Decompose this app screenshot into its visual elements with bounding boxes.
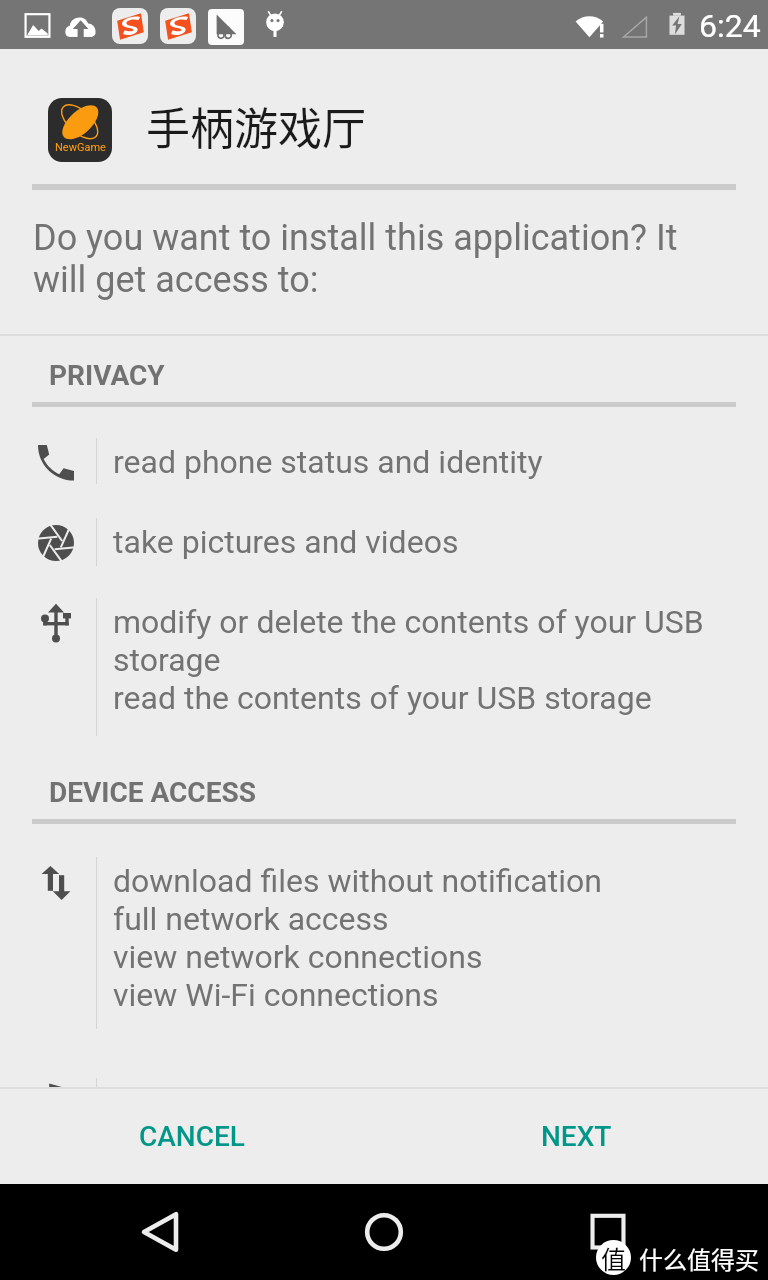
staticText: read phone status and identity: [113, 443, 543, 481]
staticText: Do you want to install this application?…: [33, 217, 713, 301]
staticText: DEVICE ACCESS: [49, 776, 256, 809]
staticText: storage: [113, 641, 221, 679]
staticText: 6:24: [699, 7, 761, 45]
button[interactable]: Back: [112, 1192, 208, 1272]
staticText: NewGame: [55, 141, 106, 154]
staticText: 值: [601, 1240, 627, 1275]
button[interactable]: CANCEL: [0, 1089, 384, 1184]
staticText: 什么值得买: [639, 1241, 759, 1276]
button[interactable]: read phone status and identity: [0, 438, 768, 484]
staticText: download files without notification: [113, 862, 602, 900]
button[interactable]: Home: [336, 1192, 432, 1272]
staticText: take pictures and videos: [113, 523, 459, 561]
button[interactable]: download files without notification: [0, 857, 768, 1029]
staticText: CANCEL: [139, 1120, 245, 1153]
staticText: view network connections: [113, 938, 483, 976]
staticText: view Wi-Fi connections: [113, 976, 439, 1014]
staticText: modify or delete the contents of your US…: [113, 603, 704, 641]
staticText: NEXT: [541, 1120, 612, 1153]
staticText: PRIVACY: [49, 359, 165, 392]
staticText: full network access: [113, 900, 389, 938]
staticText: read the contents of your USB storage: [113, 679, 652, 717]
button[interactable]: take pictures and videos: [0, 518, 768, 566]
staticText: 手柄游戏厅: [146, 94, 366, 158]
button[interactable]: modify or delete the contents of your US…: [0, 598, 768, 736]
button[interactable]: NEXT: [384, 1089, 768, 1184]
button[interactable]: Recent apps: [560, 1192, 656, 1272]
